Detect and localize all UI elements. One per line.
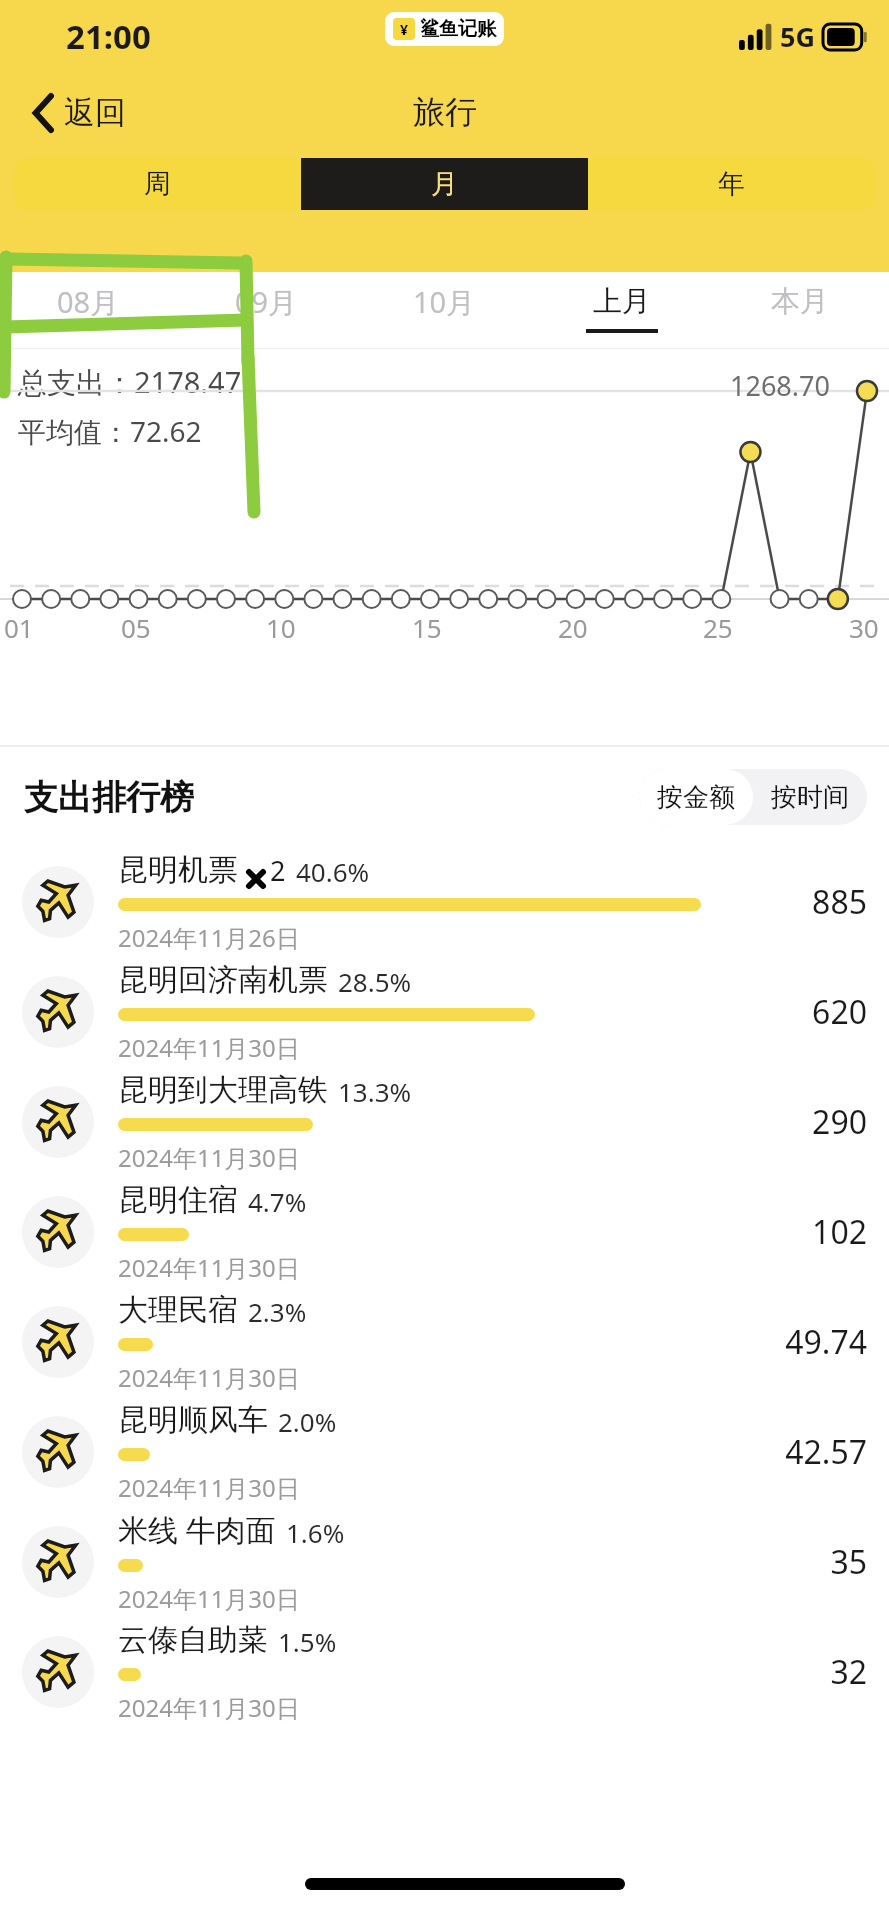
staticText: 32 [830, 1650, 867, 1694]
staticText: 昆明住宿 [118, 1181, 238, 1219]
staticText: 21:00 [66, 14, 151, 59]
staticText: 2024年11月30日 [118, 1251, 300, 1284]
staticText: 1.5% [278, 1624, 337, 1659]
staticText: 15 [412, 610, 442, 645]
staticText: 2024年11月30日 [118, 1031, 300, 1064]
staticText: 2.0% [278, 1404, 337, 1439]
button[interactable]: 按时间 [753, 769, 867, 825]
button[interactable]: 米线 牛肉面 [0, 1507, 889, 1617]
staticText: 按时间 [771, 781, 849, 814]
staticText: 13.3% [338, 1074, 412, 1109]
staticText: 35 [830, 1540, 867, 1584]
staticText: 05 [121, 610, 151, 645]
staticText: 42.57 [785, 1430, 867, 1474]
staticText: 旅行 [413, 92, 477, 132]
staticText: 云傣自助菜 [118, 1621, 268, 1659]
button[interactable]: 昆明回济南机票 [0, 957, 889, 1067]
button[interactable]: 09月 [177, 272, 355, 344]
staticText: 10月 [413, 282, 476, 322]
staticText: 5G [780, 18, 815, 55]
button[interactable]: 昆明机票 [0, 847, 889, 957]
staticText: 昆明回济南机票 [118, 961, 328, 999]
staticText: 28.5% [338, 964, 412, 999]
button[interactable]: 年 [588, 158, 875, 210]
staticText: 月 [431, 167, 458, 201]
button[interactable]: 昆明顺风车 [0, 1397, 889, 1507]
button[interactable]: 月 [301, 158, 588, 210]
button[interactable]: 本月 [711, 272, 889, 344]
staticText: 290 [812, 1100, 867, 1144]
staticText: 米线 牛肉面 [118, 1509, 276, 1550]
staticText: 102 [812, 1210, 867, 1254]
staticText: 鲨鱼记账 [420, 17, 496, 41]
staticText: 4.7% [248, 1184, 307, 1219]
staticText: 30 [849, 610, 879, 645]
staticText: 2 [270, 852, 286, 889]
button[interactable]: 周 [14, 158, 301, 210]
staticText: 2024年11月30日 [118, 1582, 300, 1615]
staticText: 2.3% [248, 1294, 307, 1329]
staticText: 49.74 [785, 1320, 867, 1364]
staticText: 本月 [771, 283, 829, 320]
staticText: 2024年11月30日 [118, 1471, 300, 1504]
staticText: 09月 [235, 282, 298, 322]
staticText: 平均值：72.62 [18, 412, 202, 450]
button[interactable]: 昆明住宿 [0, 1177, 889, 1287]
staticText: 885 [812, 880, 867, 924]
button[interactable]: 大理民宿 [0, 1287, 889, 1397]
staticText: 01 [4, 610, 34, 645]
staticText: 620 [812, 990, 867, 1034]
staticText: 2024年11月26日 [118, 921, 300, 954]
staticText: 大理民宿 [118, 1291, 238, 1329]
staticText: 昆明顺风车 [118, 1401, 268, 1439]
staticText: 2024年11月30日 [118, 1691, 300, 1724]
button[interactable]: 返回 [28, 87, 132, 138]
staticText: 昆明机票 [118, 851, 238, 889]
staticText: 上月 [593, 283, 651, 320]
staticText: 40.6% [296, 854, 370, 889]
button[interactable]: 08月 [0, 272, 177, 344]
staticText: 2024年11月30日 [118, 1361, 300, 1394]
staticText: 2024年11月30日 [118, 1141, 300, 1174]
staticText: 20 [558, 610, 588, 645]
staticText: 1268.70 [730, 367, 830, 404]
staticText: 周 [144, 167, 171, 201]
button[interactable]: 按金额 [639, 769, 753, 825]
staticText: 10 [266, 610, 296, 645]
staticText: 返回 [64, 93, 126, 132]
staticText: 总支出：2178.47 [18, 362, 242, 402]
staticText: 按金额 [657, 781, 735, 814]
button[interactable]: 昆明到大理高铁 [0, 1067, 889, 1177]
staticText: 支出排行榜 [24, 776, 194, 819]
button[interactable]: 云傣自助菜 [0, 1617, 889, 1727]
staticText: 1.6% [286, 1515, 345, 1550]
button[interactable]: 10月 [355, 272, 533, 344]
staticText: 年 [718, 167, 745, 201]
staticText: 08月 [57, 282, 120, 322]
staticText: 25 [703, 610, 733, 645]
button[interactable]: 上月 [533, 272, 711, 344]
staticText: 昆明到大理高铁 [118, 1071, 328, 1109]
staticText: ¥ [400, 20, 409, 39]
